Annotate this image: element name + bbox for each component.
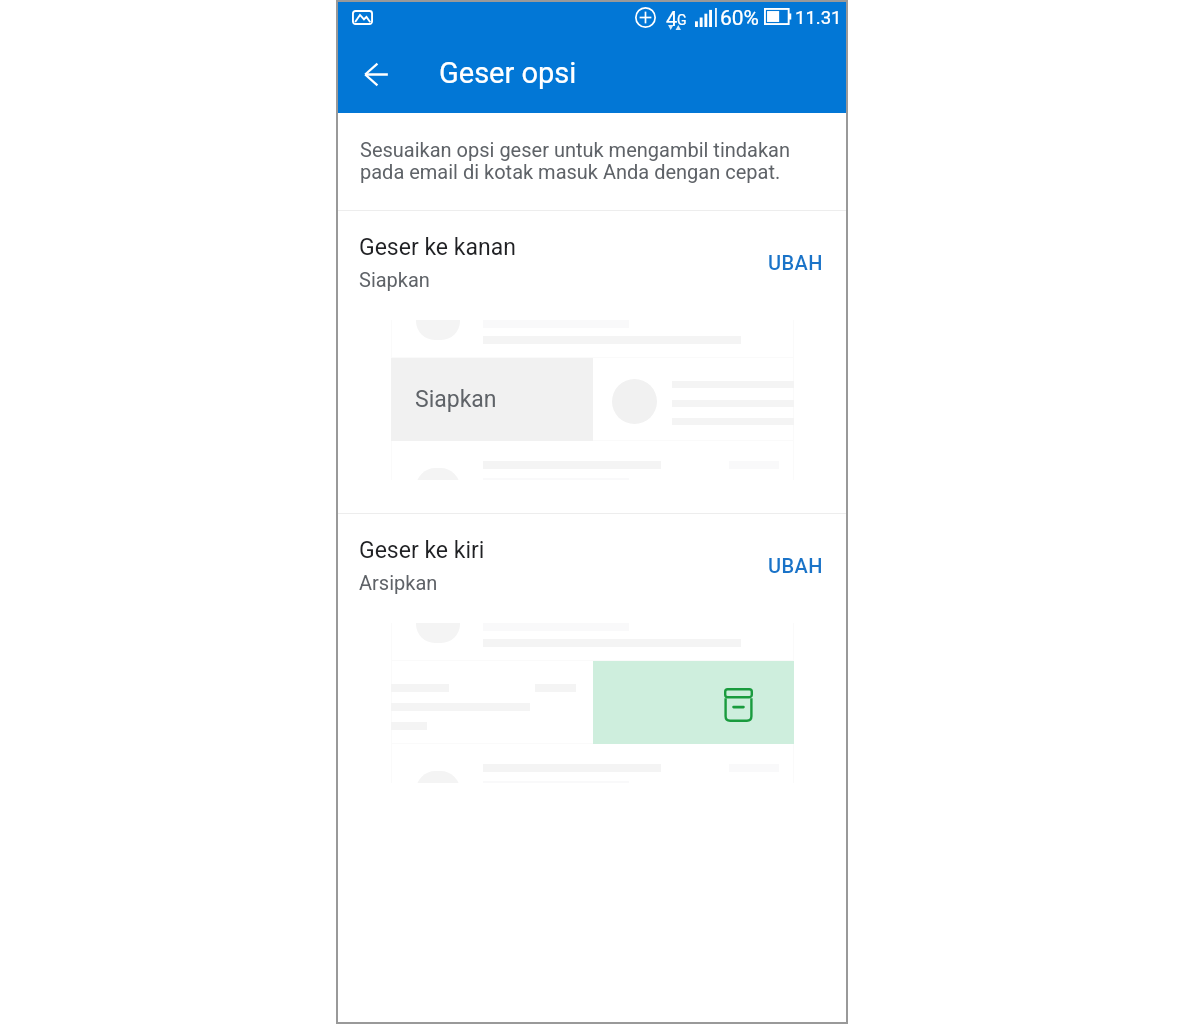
button[interactable]: UBAH xyxy=(759,548,832,583)
staticText: G xyxy=(677,12,687,28)
button[interactable]: Back xyxy=(348,46,404,102)
staticText: 60% xyxy=(720,6,759,31)
staticText: Geser ke kiri xyxy=(359,537,485,564)
staticText: 4 xyxy=(666,7,678,30)
staticText: Sesuaikan opsi geser untuk mengambil tin… xyxy=(360,138,791,161)
button[interactable]: Geser ke kanan xyxy=(338,211,846,514)
staticText: UBAH xyxy=(768,251,823,274)
staticText: 11.31 xyxy=(795,7,842,29)
button[interactable]: UBAH xyxy=(759,245,832,280)
staticText: Siapkan xyxy=(359,268,430,291)
button[interactable]: Geser ke kiri xyxy=(338,514,846,817)
staticText: Siapkan xyxy=(415,386,497,413)
staticText: UBAH xyxy=(768,554,823,577)
staticText: Arsipkan xyxy=(359,571,438,594)
staticText: Geser opsi xyxy=(439,56,577,90)
staticText: Geser ke kanan xyxy=(359,234,516,261)
staticText: pada email di kotak masuk Anda dengan ce… xyxy=(360,160,781,183)
